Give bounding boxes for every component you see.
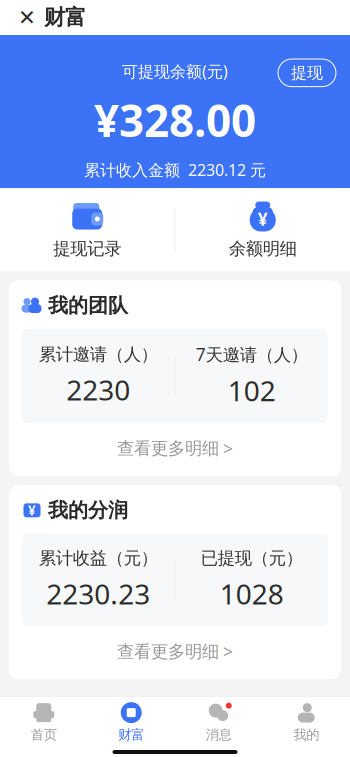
button[interactable]: 提现记录: [0, 188, 174, 271]
staticText: ¥: [28, 501, 36, 519]
staticText: 我的团队: [48, 293, 128, 318]
button[interactable]: ¥: [175, 188, 350, 271]
staticText: >: [223, 640, 233, 663]
staticText: 2230: [66, 371, 130, 408]
staticText: 1028: [220, 575, 284, 612]
staticText: 7天邀请（人）: [196, 343, 308, 366]
staticText: 累计邀请（人）: [39, 344, 158, 365]
staticText: 消息: [206, 727, 232, 743]
staticText: 我的: [293, 727, 319, 743]
button[interactable]: 查看更多明细: [9, 427, 341, 470]
button[interactable]: Close: [10, 0, 44, 34]
staticText: 2230.23: [46, 575, 150, 612]
staticText: 已提现（元）: [201, 548, 303, 569]
staticText: 财富: [44, 4, 86, 31]
staticText: 累计收入金额 2230.12 元: [84, 159, 266, 180]
staticText: >: [223, 437, 233, 460]
staticText: 102: [228, 372, 276, 409]
staticText: 可提现余额(元): [122, 60, 228, 82]
staticText: 查看更多明细: [117, 438, 219, 459]
button[interactable]: 首页: [0, 697, 87, 747]
staticText: ¥: [258, 207, 268, 230]
button[interactable]: 消息: [175, 697, 262, 747]
staticText: 提现记录: [53, 238, 121, 259]
button[interactable]: 提现: [278, 59, 336, 87]
staticText: ¥328.00: [94, 91, 256, 149]
button[interactable]: 财富: [87, 697, 175, 747]
staticText: 查看更多明细: [117, 641, 219, 662]
staticText: 财富: [118, 727, 144, 743]
staticText: 累计收益（元）: [39, 548, 158, 569]
staticText: 我的分润: [48, 498, 128, 523]
staticText: 提现: [291, 63, 323, 83]
staticText: 余额明细: [229, 238, 297, 259]
button[interactable]: 我的: [262, 697, 350, 747]
button[interactable]: 查看更多明细: [9, 630, 341, 673]
staticText: 首页: [31, 727, 57, 743]
staticText: ✕: [18, 5, 36, 30]
